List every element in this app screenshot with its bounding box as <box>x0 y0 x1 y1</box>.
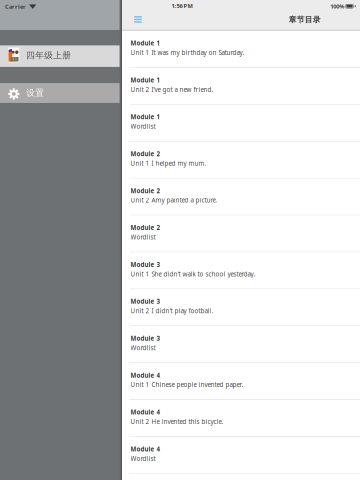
button[interactable]: Module 2 <box>122 179 360 215</box>
staticText: 设置 <box>26 87 44 98</box>
staticText: Wordlist <box>131 454 156 463</box>
staticText: Wordlist <box>131 122 156 131</box>
button[interactable]: 四年级上册 <box>0 45 122 67</box>
staticText: Unit 2 I've got a new friend. <box>131 85 214 94</box>
staticText: Unit 2 I didn't play football. <box>131 307 214 315</box>
button[interactable]: 设置 <box>0 83 122 103</box>
staticText: Module 1 <box>131 39 161 47</box>
staticText: 章节目录 <box>289 15 321 24</box>
staticText: Unit 1 Chinese people invented paper. <box>131 380 244 389</box>
button[interactable]: Module 4 <box>122 400 360 437</box>
staticText: Unit 1 I helped my mum. <box>131 159 207 167</box>
button[interactable]: Module 4 <box>122 437 360 474</box>
staticText: Unit 1 It was my birthday on Saturday. <box>131 48 245 57</box>
staticText: Carrier <box>5 3 26 10</box>
button[interactable]: Module 3 <box>122 252 360 289</box>
staticText: Module 1 <box>131 113 161 121</box>
staticText: 四年级上册 <box>26 50 71 61</box>
button[interactable]: Module 2 <box>122 142 360 179</box>
staticText: Unit 2 He invented this bicycle. <box>131 417 224 426</box>
staticText: 1:56 PM <box>171 2 192 10</box>
button[interactable]: Module 1 <box>122 31 360 68</box>
staticText: 100% <box>330 2 344 10</box>
button[interactable]: Show sidebar <box>128 10 148 28</box>
button[interactable]: Module 1 <box>122 68 360 105</box>
staticText: Module 2 <box>131 187 161 195</box>
staticText: Wordlist <box>131 344 156 352</box>
staticText: Wordlist <box>131 233 156 241</box>
button[interactable]: Module 3 <box>122 326 360 363</box>
staticText: Unit 2 Amy painted a picture. <box>131 196 218 204</box>
button[interactable]: Module 2 <box>122 215 360 252</box>
button[interactable]: Module 1 <box>122 105 360 142</box>
staticText: Module 4 <box>131 445 161 453</box>
staticText: Module 3 <box>131 334 161 343</box>
staticText: Module 2 <box>131 150 161 158</box>
button[interactable]: Module 4 <box>122 363 360 400</box>
staticText: Module 2 <box>131 223 161 232</box>
button[interactable]: Module 3 <box>122 289 360 326</box>
staticText: Module 3 <box>131 260 161 269</box>
staticText: Module 4 <box>131 408 161 416</box>
staticText: Module 1 <box>131 76 161 84</box>
staticText: Module 4 <box>131 371 161 379</box>
staticText: Unit 1 She didn't walk to school yesterd… <box>131 270 256 278</box>
staticText: Module 3 <box>131 297 161 306</box>
